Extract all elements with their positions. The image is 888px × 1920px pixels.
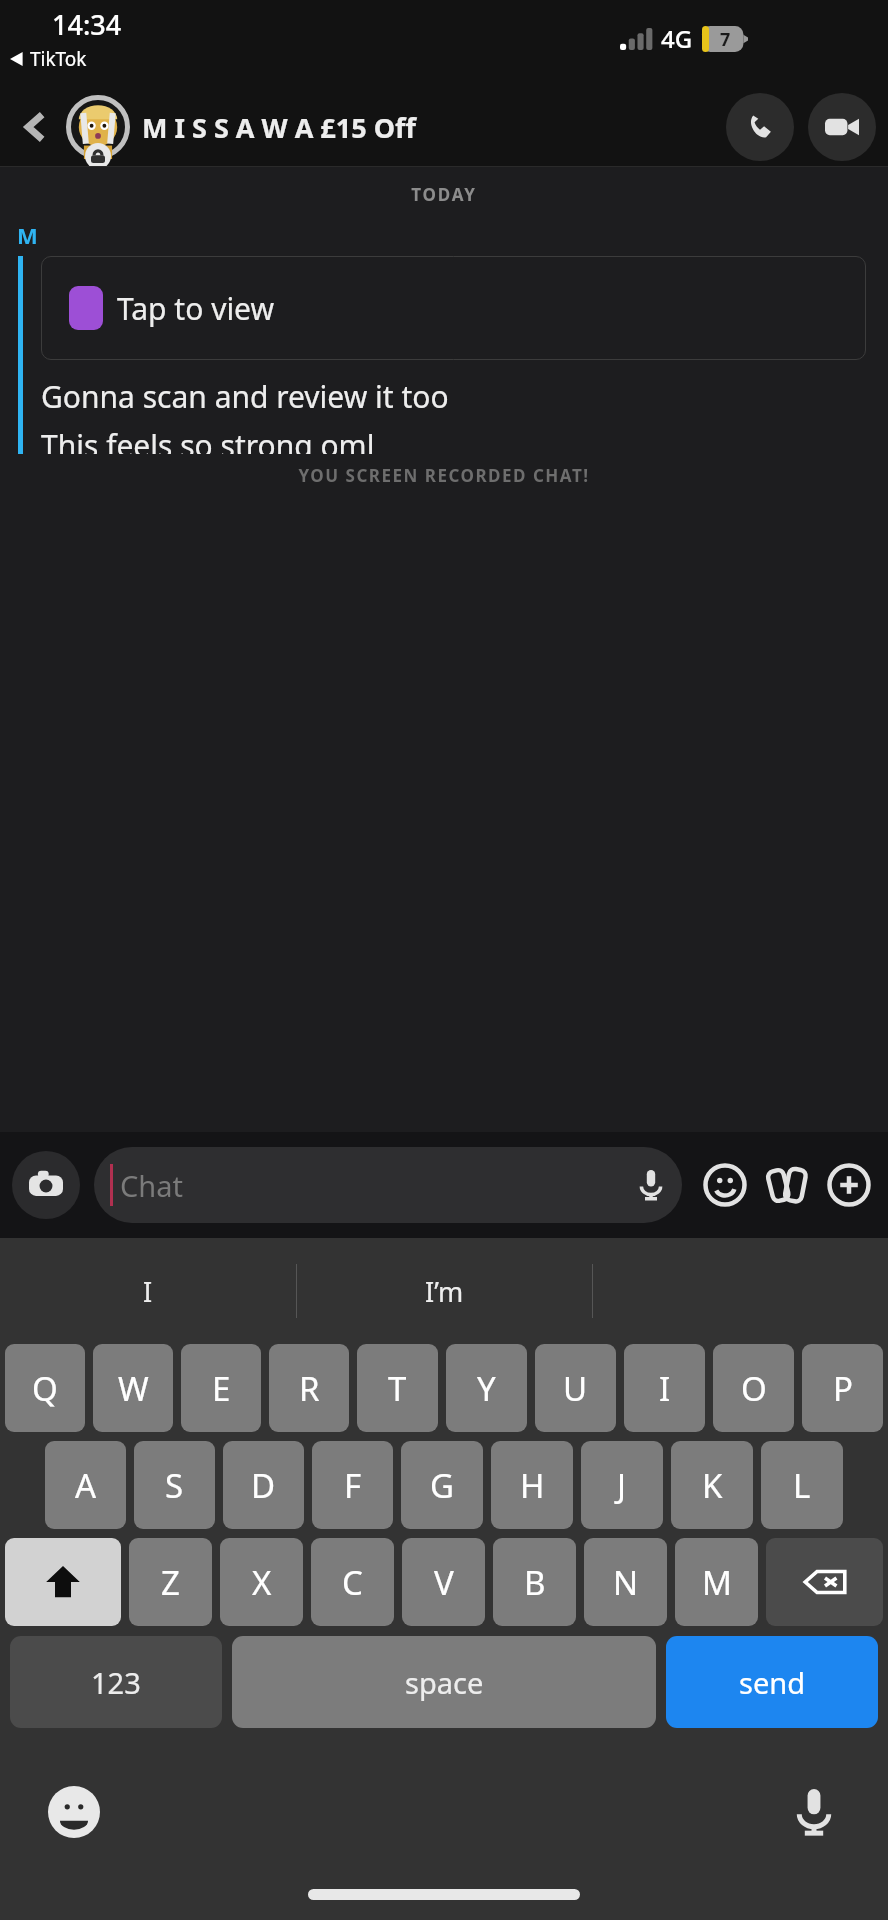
staticText: 14:34 xyxy=(52,6,122,43)
staticText: U xyxy=(563,1366,588,1411)
staticText: I xyxy=(143,1273,153,1310)
staticText: Z xyxy=(161,1560,180,1605)
button[interactable]: C xyxy=(311,1538,394,1626)
staticText: O xyxy=(741,1366,767,1411)
button[interactable]: Call xyxy=(726,93,794,161)
button[interactable]: I’m xyxy=(297,1238,592,1344)
button[interactable]: Chat xyxy=(94,1147,682,1223)
button[interactable]: A xyxy=(45,1441,126,1529)
staticText: G xyxy=(430,1463,455,1508)
button[interactable]: P xyxy=(802,1344,883,1432)
button[interactable]: R xyxy=(269,1344,349,1432)
staticText: B xyxy=(524,1560,546,1605)
staticText: D xyxy=(251,1463,276,1508)
staticText: TODAY xyxy=(0,183,888,206)
button[interactable]: B xyxy=(493,1538,576,1626)
button[interactable]: S xyxy=(134,1441,215,1529)
button[interactable]: U xyxy=(535,1344,616,1432)
staticText: F xyxy=(344,1463,362,1508)
button[interactable]: Stickers xyxy=(698,1158,752,1212)
staticText: M xyxy=(17,220,38,250)
button[interactable]: Y xyxy=(446,1344,527,1432)
staticText: R xyxy=(299,1366,320,1411)
button[interactable]: M xyxy=(675,1538,758,1626)
staticText: Tap to view xyxy=(117,288,275,329)
staticText: E xyxy=(212,1366,231,1411)
staticText: L xyxy=(793,1463,811,1508)
staticText: Gonna scan and review it too xyxy=(41,376,449,417)
staticText: T xyxy=(388,1366,407,1411)
button[interactable]: I xyxy=(0,1238,296,1344)
staticText: Y xyxy=(477,1366,496,1411)
button[interactable]: send xyxy=(666,1636,878,1728)
staticText: N xyxy=(613,1560,639,1605)
staticText: M I S S A W A £15 Off xyxy=(142,109,416,146)
staticText: P xyxy=(833,1366,853,1411)
button[interactable]: N xyxy=(584,1538,667,1626)
button[interactable]: Back xyxy=(12,103,60,151)
button[interactable]: W xyxy=(93,1344,173,1432)
button[interactable]: T xyxy=(357,1344,438,1432)
button[interactable]: O xyxy=(713,1344,794,1432)
staticText: TikTok xyxy=(30,46,87,72)
button[interactable]: Voice input xyxy=(786,1784,842,1840)
button[interactable]: Emoji keyboard xyxy=(46,1784,102,1840)
staticText: 4G xyxy=(661,22,693,55)
staticText: I’m xyxy=(425,1273,464,1310)
staticText: I xyxy=(659,1366,671,1411)
button[interactable]: L xyxy=(761,1441,843,1529)
staticText: YOU SCREEN RECORDED CHAT! xyxy=(0,464,888,487)
button[interactable]: E xyxy=(181,1344,261,1432)
staticText: This feels so strong oml xyxy=(41,425,375,454)
button[interactable]: Q xyxy=(5,1344,85,1432)
staticText: Chat xyxy=(120,1166,183,1205)
button[interactable]: More options xyxy=(822,1158,876,1212)
staticText: K xyxy=(702,1463,723,1508)
staticText: S xyxy=(165,1463,184,1508)
button[interactable]: G xyxy=(401,1441,483,1529)
staticText: space xyxy=(405,1663,484,1702)
button[interactable]: K xyxy=(671,1441,753,1529)
staticText: J xyxy=(617,1463,627,1508)
staticText: C xyxy=(342,1560,363,1605)
staticText: Q xyxy=(32,1366,58,1411)
staticText: 7 xyxy=(720,27,731,52)
other: Voice note xyxy=(636,1170,666,1200)
button[interactable]: Shift xyxy=(5,1538,121,1626)
staticText: V xyxy=(434,1560,454,1605)
staticText: H xyxy=(520,1463,545,1508)
button[interactable]: J xyxy=(581,1441,663,1529)
button[interactable]: Backspace xyxy=(766,1538,883,1626)
button[interactable]: space xyxy=(232,1636,656,1728)
button[interactable]: D xyxy=(223,1441,304,1529)
button[interactable]: Video call xyxy=(808,93,876,161)
button[interactable]: Cameos xyxy=(760,1158,814,1212)
button[interactable]: V xyxy=(402,1538,485,1626)
staticText: X xyxy=(252,1560,272,1605)
staticText: W xyxy=(118,1366,149,1411)
staticText: A xyxy=(75,1463,97,1508)
button[interactable]: 123 xyxy=(10,1636,222,1728)
button[interactable]: Z xyxy=(129,1538,212,1626)
button[interactable]: H xyxy=(491,1441,573,1529)
staticText: M xyxy=(702,1560,732,1605)
staticText: 123 xyxy=(91,1663,141,1702)
button[interactable]: X xyxy=(220,1538,303,1626)
staticText: send xyxy=(739,1663,806,1702)
button[interactable]: Camera xyxy=(12,1151,80,1219)
button[interactable]: F xyxy=(312,1441,393,1529)
button[interactable]: Tap to view xyxy=(41,256,866,360)
button[interactable]: I xyxy=(624,1344,705,1432)
